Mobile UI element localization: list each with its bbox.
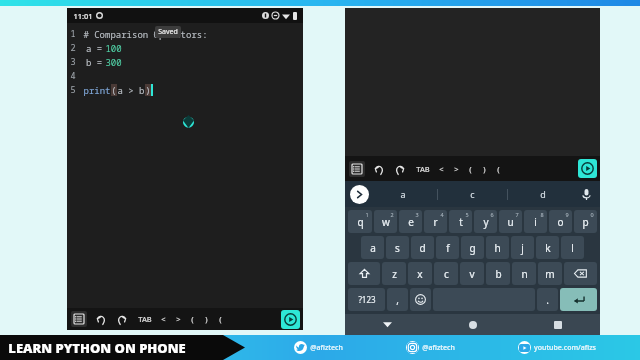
button[interactable]: y [474,210,497,233]
staticText: a [400,188,406,200]
staticText: w [382,215,390,229]
button[interactable]: < [161,311,166,327]
button[interactable]: i [524,210,547,233]
button[interactable]: ( [469,161,472,177]
button[interactable]: More suggestions [350,185,369,204]
button[interactable]: f [436,236,459,259]
button[interactable]: TAB [416,161,430,177]
button[interactable]: p [574,210,597,233]
staticText: ( [497,164,500,174]
button[interactable]: , [387,288,408,311]
staticText: 300 [105,56,122,68]
staticText: 9 [565,211,569,218]
button[interactable]: Shift [348,262,380,285]
button[interactable]: s [386,236,409,259]
button[interactable]: . [537,288,558,311]
button[interactable]: Backspace [564,262,597,285]
button[interactable]: @afiztech [294,341,343,354]
button[interactable]: Undo [94,312,108,326]
staticText: d [540,188,546,200]
staticText: 1 [70,28,76,40]
button[interactable]: Run [578,159,597,178]
staticText: r [433,215,438,229]
staticText: j [521,241,524,255]
button[interactable]: a [361,236,384,259]
staticText: print [83,84,111,96]
staticText: o [557,215,564,229]
button[interactable]: > [176,311,181,327]
button[interactable]: c [438,181,507,207]
button[interactable]: Emoji [410,288,431,311]
staticText: s [395,241,400,255]
staticText: y [483,215,489,229]
button[interactable]: g [461,236,484,259]
button[interactable]: Back [345,314,430,335]
staticText: 6 [490,211,494,218]
staticText: 3 [415,211,419,218]
staticText: ) [483,164,486,174]
button[interactable]: b [486,262,510,285]
staticText: l [571,241,574,255]
staticText: c [470,188,475,200]
button[interactable]: ) [205,311,208,327]
button[interactable]: Enter [560,288,597,311]
staticText: , [396,293,399,307]
button[interactable]: @afiztech [406,341,455,354]
staticText: k [545,241,551,255]
staticText: ( [219,314,222,324]
staticText: # Comparison Operators: [83,28,208,40]
button[interactable]: o [549,210,572,233]
staticText: 4 [440,211,444,218]
staticText: 5 [70,84,76,96]
button[interactable]: e [399,210,422,233]
button[interactable]: Home [430,314,515,335]
button[interactable]: w [374,210,397,233]
button[interactable]: ( [497,161,500,177]
staticText: 2 [70,42,76,54]
staticText: ) [145,84,151,96]
button[interactable]: x [408,262,432,285]
staticText: 11:01 [73,11,93,21]
staticText: e [408,215,414,229]
button[interactable]: d [508,181,577,207]
button[interactable]: ( [219,311,222,327]
staticText: 1 [365,211,369,218]
staticText: LEARN PYTHON ON PHONE [8,339,186,357]
button[interactable]: File list [349,161,365,177]
button[interactable]: c [434,262,458,285]
button[interactable]: ) [483,161,486,177]
button[interactable]: d [411,236,434,259]
button[interactable]: m [538,262,562,285]
button[interactable]: u [499,210,522,233]
button[interactable]: t [449,210,472,233]
button[interactable]: n [512,262,536,285]
button[interactable]: q [348,210,372,233]
button[interactable]: k [536,236,559,259]
staticText: > [454,164,459,174]
button[interactable]: Recents [515,314,600,335]
button[interactable]: youtube.com/afizs [518,341,596,354]
button[interactable]: r [424,210,447,233]
button[interactable]: Voice input [577,185,595,203]
button[interactable]: l [561,236,584,259]
button[interactable]: Redo [114,312,128,326]
button[interactable]: > [454,161,459,177]
button[interactable]: Redo [392,162,406,176]
button[interactable]: TAB [138,311,152,327]
button[interactable]: v [460,262,484,285]
staticText: i [534,215,537,229]
staticText: ?123 [358,294,376,305]
button[interactable]: h [486,236,509,259]
button[interactable]: a [369,181,437,207]
button[interactable]: z [382,262,406,285]
button[interactable]: ?123 [348,288,385,311]
staticText: 0 [590,211,594,218]
staticText: ( [111,84,117,96]
button[interactable]: ( [191,311,194,327]
button[interactable]: Undo [372,162,386,176]
button[interactable]: j [511,236,534,259]
button[interactable]: < [439,161,444,177]
button[interactable]: File list [71,311,87,327]
button[interactable]: Run [281,310,300,329]
